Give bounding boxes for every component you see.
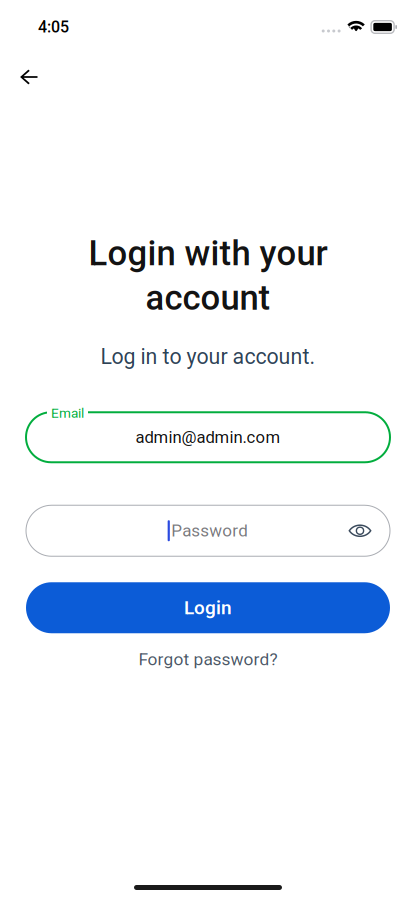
button[interactable]: Login xyxy=(26,582,390,633)
staticText: Password xyxy=(171,521,248,541)
button[interactable]: Forgot password? xyxy=(132,643,283,676)
staticText: Email xyxy=(51,405,84,421)
staticText: admin@admin.com xyxy=(135,427,280,447)
staticText: Login xyxy=(184,597,232,619)
staticText: 4:05 xyxy=(38,18,69,36)
button[interactable]: Show password xyxy=(339,505,381,556)
button[interactable]: Back xyxy=(6,46,52,90)
staticText: account xyxy=(145,278,270,318)
staticText: Login with your xyxy=(88,233,327,274)
staticText: Log in to your account. xyxy=(100,344,315,369)
staticText: Forgot password? xyxy=(138,649,277,670)
